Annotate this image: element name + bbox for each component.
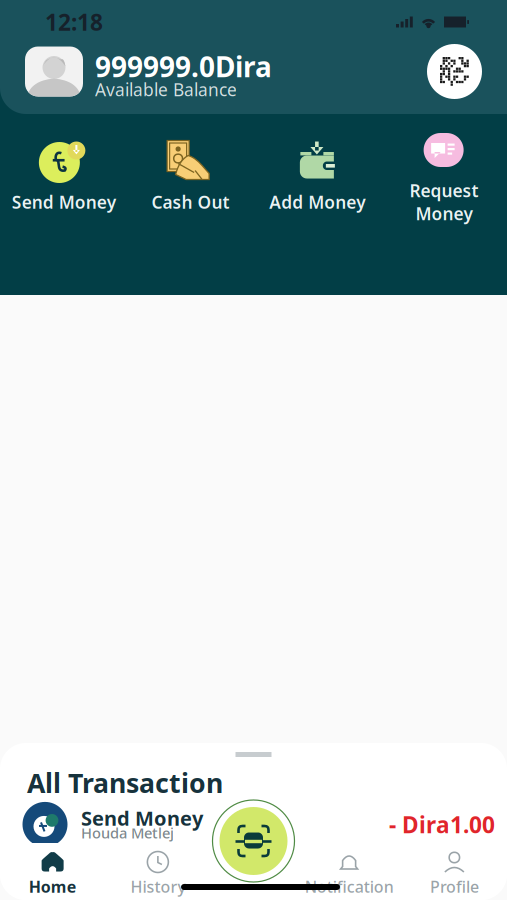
staticText: Notification	[305, 876, 394, 897]
button[interactable]: Home	[0, 851, 105, 897]
button[interactable]: Cash Out	[127, 138, 254, 213]
staticText: 12:18	[45, 7, 103, 37]
staticText: Home	[29, 876, 77, 897]
staticText: Send Money	[81, 805, 203, 831]
button[interactable]: Profile	[402, 851, 507, 897]
button[interactable]: Scan QR code	[427, 44, 482, 99]
staticText: 999999.0Dira	[95, 48, 272, 85]
staticText: Profile	[430, 876, 479, 897]
staticText: Add Money	[269, 190, 365, 213]
staticText: History	[130, 876, 185, 897]
staticText: Available Balance	[95, 78, 237, 101]
staticText: Request Money	[409, 179, 478, 225]
button[interactable]: Send Money	[0, 801, 507, 847]
staticText: Cash Out	[151, 190, 229, 213]
button[interactable]: Notification	[296, 851, 402, 897]
staticText: - Dira1.00	[389, 809, 495, 839]
button[interactable]: Request Money	[380, 127, 507, 225]
button[interactable]: History	[105, 851, 210, 897]
button[interactable]: Add Money	[253, 138, 380, 213]
button[interactable]: Scan	[211, 799, 295, 883]
staticText: Houda Metlej	[81, 823, 174, 843]
staticText: Send Money	[11, 190, 115, 213]
button[interactable]: Send Money	[0, 138, 127, 213]
staticText: All Transaction	[27, 765, 223, 800]
